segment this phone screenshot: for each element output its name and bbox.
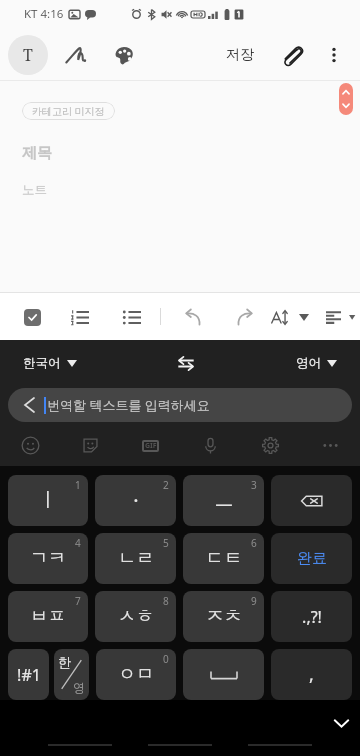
staticText: , (309, 662, 314, 687)
staticText: T (23, 44, 33, 66)
button[interactable]: Undo (174, 298, 212, 336)
staticText: 7 (75, 594, 81, 608)
button[interactable]: 6 (183, 533, 264, 584)
button[interactable]: Palette (104, 35, 144, 75)
button[interactable]: Numbered list (60, 298, 98, 336)
staticText: 6 (251, 536, 257, 550)
staticText: · (133, 487, 139, 514)
button[interactable]: Pen (56, 35, 96, 75)
staticText: 제목 (22, 144, 52, 163)
staticText: ㅣ (38, 488, 58, 513)
button[interactable]: , (271, 649, 352, 700)
staticText: 한 (58, 654, 71, 670)
staticText: ㄷㅌ (206, 547, 242, 570)
button[interactable]: Hide keyboard (328, 710, 354, 736)
staticText: 4 (75, 536, 81, 550)
button[interactable]: GIF (120, 425, 180, 466)
button[interactable]: 영어 (294, 351, 339, 375)
staticText: ㅅㅎ (118, 605, 154, 628)
button[interactable]: Scroll (339, 83, 353, 115)
staticText: 1 (75, 478, 81, 492)
button[interactable]: hanyoung (54, 649, 89, 700)
staticText: KT 4:16 (24, 6, 64, 22)
button[interactable]: Swap languages (170, 347, 202, 379)
button[interactable]: Text size (261, 298, 299, 336)
staticText: !#1 (17, 664, 41, 686)
button[interactable]: back (271, 475, 352, 526)
button[interactable]: 5 (95, 533, 176, 584)
button[interactable]: Redo (226, 298, 264, 336)
staticText: 카테고리 미지정 (32, 104, 105, 118)
staticText: ㄴㄹ (118, 547, 154, 570)
staticText: 3 (251, 478, 257, 492)
button[interactable]: Settings (240, 425, 300, 466)
staticText: 완료 (297, 549, 327, 568)
button[interactable]: More options (316, 37, 352, 73)
button[interactable]: 7 (8, 591, 88, 642)
button[interactable]: !#1 (8, 649, 49, 700)
staticText: ㅈㅊ (206, 605, 242, 628)
staticText: 노트 (22, 182, 47, 198)
button[interactable]: Text tool (8, 35, 48, 75)
button[interactable]: 4 (8, 533, 88, 584)
button[interactable]: .,?! (271, 591, 352, 642)
button[interactable]: Align (314, 298, 352, 336)
staticText: 8 (163, 594, 169, 608)
staticText: 2 (163, 478, 169, 492)
button[interactable]: 8 (95, 591, 176, 642)
staticText: ㅇㅁ (118, 663, 154, 686)
button[interactable]: Home (130, 738, 230, 752)
button[interactable]: space (183, 649, 264, 700)
button[interactable]: 완료 (271, 533, 352, 584)
staticText: GIF (145, 441, 157, 451)
button[interactable]: Attach (274, 35, 314, 75)
button[interactable]: 2 (95, 475, 176, 526)
button[interactable]: Bulleted list (112, 298, 150, 336)
button[interactable]: 1 (8, 475, 88, 526)
button[interactable]: Emoji (0, 425, 60, 466)
staticText: ㅡ (214, 488, 234, 513)
staticText: 한국어 (23, 355, 61, 371)
button[interactable]: More (300, 425, 360, 466)
staticText: 저장 (226, 46, 254, 64)
button[interactable]: 0 (96, 649, 176, 700)
button[interactable]: 번역할 텍스트를 입력하세요 (8, 388, 352, 422)
staticText: .,?! (302, 606, 322, 628)
button[interactable]: Sticker (60, 425, 120, 466)
button[interactable]: Checklist (13, 298, 51, 336)
button[interactable]: Recents (30, 738, 130, 752)
staticText: 영 (73, 680, 85, 695)
staticText: 5 (163, 536, 169, 550)
button[interactable]: 3 (183, 475, 264, 526)
staticText: 9 (251, 594, 257, 608)
button[interactable]: 저장 (218, 40, 262, 70)
staticText: 영어 (296, 355, 321, 371)
button[interactable]: Text size options (285, 298, 323, 336)
staticText: ㅂㅍ (30, 605, 66, 628)
button[interactable]: 카테고리 미지정 (22, 102, 115, 120)
staticText: 번역할 텍스트를 입력하세요 (47, 396, 210, 414)
button[interactable]: 한국어 (21, 351, 79, 375)
button[interactable]: Align options (346, 306, 360, 330)
button[interactable]: Voice input (180, 425, 240, 466)
staticText: ㄱㅋ (30, 547, 66, 570)
button[interactable]: Back (230, 738, 330, 752)
button[interactable]: 9 (183, 591, 264, 642)
staticText: 0 (163, 652, 169, 666)
